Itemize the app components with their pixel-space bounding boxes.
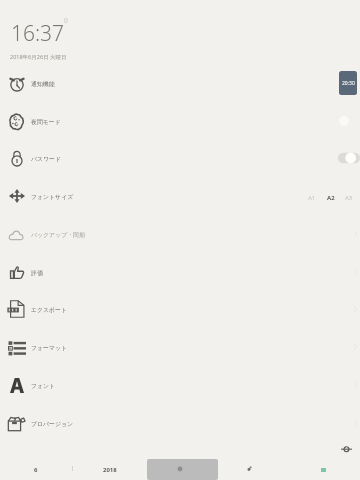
staticText: 6 <box>34 466 38 474</box>
staticText: プロバージョン <box>31 420 74 427</box>
staticText: フォントサイズ <box>31 193 74 200</box>
staticText: 16:37 <box>11 19 65 48</box>
staticText: 2018 <box>103 466 117 474</box>
button[interactable]: フォーマット <box>0 328 360 366</box>
button[interactable]: Note <box>247 466 252 471</box>
staticText: 夜間モード <box>31 118 61 125</box>
button[interactable]: フォント <box>0 366 360 404</box>
staticText: A2 <box>327 194 335 202</box>
button[interactable]: 6 <box>30 464 42 476</box>
staticText: エクスポート <box>31 306 68 313</box>
staticText: フォーマット <box>31 344 68 351</box>
button[interactable]: 夜間モード <box>0 102 360 140</box>
staticText: 通知機能 <box>31 80 55 87</box>
button[interactable]: A2 <box>324 191 338 205</box>
staticText: 0 <box>64 16 68 25</box>
button[interactable]: エクスポート <box>0 290 360 328</box>
staticText: 2018年6月26日 火曜日 <box>10 53 67 61</box>
staticText: A1 <box>308 194 316 202</box>
button[interactable]: フォントサイズ <box>0 177 360 215</box>
button[interactable]: Adjust <box>341 444 352 455</box>
button[interactable]: 2018 <box>96 464 124 476</box>
staticText: | <box>71 464 75 472</box>
button[interactable]: Switch off <box>334 113 360 129</box>
button[interactable]: 通知機能 <box>0 64 360 102</box>
button[interactable]: A3 <box>342 191 356 205</box>
button[interactable]: Switch on <box>334 150 360 166</box>
button[interactable]: 20:30 <box>339 71 357 95</box>
button[interactable]: パスワード <box>0 139 360 177</box>
staticText: フォント <box>31 382 56 389</box>
staticText: A3 <box>345 194 353 202</box>
staticText: 評価 <box>31 269 43 276</box>
button[interactable]: 評価 <box>0 253 360 291</box>
button[interactable]: バックアップ・同期 <box>0 215 360 253</box>
button[interactable]: Menu <box>147 459 218 480</box>
staticText: 20:30 <box>342 80 355 87</box>
staticText: パスワード <box>31 155 62 162</box>
button[interactable]: A1 <box>305 191 319 205</box>
staticText: バックアップ・同期 <box>31 231 85 238</box>
button[interactable]: プロバージョン <box>0 404 360 442</box>
